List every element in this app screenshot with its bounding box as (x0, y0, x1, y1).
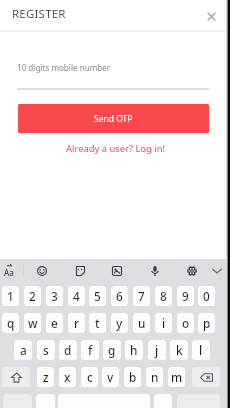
staticText: e (51, 315, 58, 331)
staticText: 3 (51, 288, 58, 304)
button[interactable]: Comma (36, 394, 55, 408)
button[interactable]: Close (199, 4, 223, 28)
staticText: g (108, 342, 116, 358)
staticText: 2 (29, 288, 36, 304)
staticText: 4 (73, 288, 80, 304)
staticText: o (182, 315, 190, 331)
staticText: k (176, 342, 183, 358)
staticText: y (116, 315, 123, 331)
button[interactable]: Backspace (192, 367, 220, 387)
staticText: c (87, 369, 93, 385)
button[interactable]: Keyboard settings (181, 259, 203, 282)
staticText: r (74, 315, 79, 331)
staticText: 6 (116, 288, 123, 304)
button[interactable]: m (168, 367, 185, 387)
button[interactable]: Shift (2, 367, 30, 387)
staticText: m (171, 369, 183, 385)
button[interactable]: Send OTP (18, 104, 209, 133)
button[interactable]: 1 (2, 286, 19, 306)
button[interactable]: GIF (106, 259, 128, 282)
button[interactable]: c (81, 367, 98, 387)
button[interactable]: a (14, 340, 32, 360)
button[interactable]: 4 (68, 286, 85, 306)
button[interactable]: Already a user? Log in! (0, 141, 230, 155)
staticText: REGISTER (12, 6, 66, 20)
staticText: d (64, 342, 72, 358)
button[interactable]: k (170, 340, 188, 360)
staticText: u (138, 315, 146, 331)
staticText: 10 digits mobile number (17, 62, 111, 73)
button[interactable]: l (192, 340, 210, 360)
button[interactable]: r (68, 313, 85, 333)
button[interactable]: i (155, 313, 172, 333)
staticText: 7 (138, 288, 145, 304)
staticText: 8 (160, 288, 167, 304)
button[interactable]: w (24, 313, 41, 333)
staticText: v (107, 369, 114, 385)
button[interactable]: q (2, 313, 19, 333)
staticText: h (130, 342, 138, 358)
button[interactable]: 2 (24, 286, 41, 306)
staticText: x (64, 369, 71, 385)
button[interactable]: f (81, 340, 99, 360)
button[interactable]: z (37, 367, 54, 387)
button[interactable]: h (125, 340, 143, 360)
button[interactable]: x (59, 367, 76, 387)
staticText: i (162, 315, 166, 331)
staticText: 1 (7, 288, 14, 304)
staticText: a (20, 342, 27, 358)
staticText: 0 (203, 288, 210, 304)
staticText: f (88, 342, 93, 358)
button[interactable]: Text formatting (0, 259, 20, 282)
button[interactable]: s (37, 340, 55, 360)
button[interactable]: d (59, 340, 77, 360)
button[interactable]: Voice input (144, 259, 166, 282)
button[interactable]: 8 (155, 286, 172, 306)
staticText: q (7, 315, 15, 331)
staticText: Aa (4, 267, 14, 278)
button[interactable]: Period (154, 394, 172, 408)
button[interactable]: 5 (89, 286, 106, 306)
staticText: p (203, 315, 211, 331)
button[interactable]: 7 (133, 286, 150, 306)
button[interactable]: o (177, 313, 194, 333)
staticText: t (95, 315, 100, 331)
button[interactable]: 6 (111, 286, 128, 306)
staticText: n (151, 369, 159, 385)
staticText: j (155, 342, 159, 358)
button[interactable]: 9 (177, 286, 194, 306)
button[interactable]: e (46, 313, 63, 333)
staticText: 5 (94, 288, 101, 304)
staticText: b (129, 369, 137, 385)
button[interactable]: Hide keyboard (206, 259, 228, 282)
button[interactable]: u (133, 313, 150, 333)
button[interactable]: REGISTER (12, 6, 66, 20)
staticText: Send OTP (94, 113, 133, 125)
staticText: l (199, 342, 203, 358)
button[interactable]: b (124, 367, 141, 387)
staticText: Already a user? Log in! (66, 142, 165, 155)
button[interactable]: p (198, 313, 215, 333)
staticText: s (43, 342, 49, 358)
button[interactable]: v (102, 367, 119, 387)
button[interactable]: y (111, 313, 128, 333)
button[interactable]: 3 (46, 286, 63, 306)
staticText: 9 (182, 288, 189, 304)
staticText: w (28, 315, 38, 331)
button[interactable]: n (146, 367, 163, 387)
button[interactable]: 0 (198, 286, 215, 306)
button[interactable]: j (148, 340, 166, 360)
button[interactable]: g (103, 340, 121, 360)
staticText: z (43, 369, 49, 385)
button[interactable]: Stickers (69, 259, 91, 282)
button[interactable]: t (89, 313, 106, 333)
button[interactable]: Emoji (31, 259, 53, 282)
